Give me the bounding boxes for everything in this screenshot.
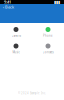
staticText: Camera — [11, 34, 20, 37]
staticText: ‹ Back — [3, 4, 14, 10]
button[interactable]: Music — [0, 43, 32, 54]
staticText: Phone — [43, 34, 53, 37]
staticText: Music — [12, 50, 19, 54]
button[interactable]: Contacts — [32, 43, 64, 54]
staticText: 9:41 — [4, 0, 11, 5]
staticText: ▮▮▮ — [54, 0, 60, 4]
staticText: © 2024 Example Inc. — [18, 91, 46, 95]
button[interactable]: Camera — [0, 27, 32, 37]
staticText: Contacts — [42, 50, 53, 54]
button[interactable]: Phone — [32, 27, 64, 37]
